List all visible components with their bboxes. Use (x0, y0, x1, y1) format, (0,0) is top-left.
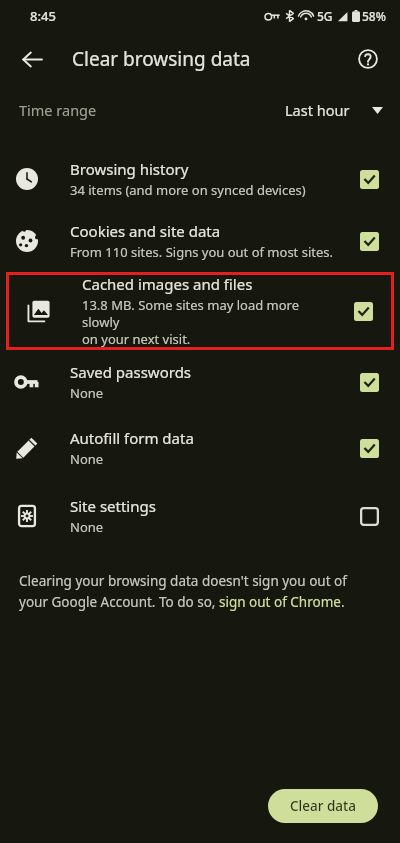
button[interactable]: Cookies and site data (0, 210, 400, 272)
button[interactable]: Browsing history (0, 148, 400, 210)
button[interactable]: Checked (354, 433, 384, 463)
staticText: Site settings (70, 496, 156, 516)
button[interactable]: Site settings (0, 482, 400, 550)
staticText: Browsing history (70, 159, 189, 179)
staticText: 58% (362, 8, 386, 24)
staticText: Clear data (290, 797, 356, 815)
button[interactable]: Back (12, 39, 52, 79)
button[interactable]: Autofill form data (0, 414, 400, 482)
staticText: 34 items (and more on synced devices) (70, 181, 306, 199)
staticText: Last hour (285, 100, 350, 120)
staticText: Cached images and files (82, 274, 253, 294)
button[interactable]: Checked (354, 226, 384, 256)
staticText: Cookies and site data (70, 221, 221, 241)
button[interactable]: Checked (354, 367, 384, 397)
staticText: 5G (317, 8, 333, 24)
button[interactable]: Time range (0, 86, 400, 134)
staticText: None (70, 450, 104, 468)
staticText: Clear browsing data (72, 46, 251, 72)
button[interactable]: Checked (354, 164, 384, 194)
staticText: Autofill form data (70, 428, 194, 448)
staticText: 13.8 MB. Some sites may load more slowly… (82, 296, 338, 348)
button[interactable]: Clearing your browsing data doesn't sign… (19, 572, 360, 611)
staticText: Time range (19, 100, 97, 120)
staticText: None (70, 518, 104, 536)
button[interactable]: Checked (348, 296, 378, 326)
staticText: None (70, 384, 104, 402)
staticText: From 110 sites. Signs you out of most si… (70, 243, 334, 261)
staticText: 8:45 (30, 7, 56, 25)
button[interactable]: Unchecked (354, 501, 384, 531)
button[interactable]: Help (348, 39, 388, 79)
button[interactable]: Saved passwords (0, 350, 400, 414)
staticText: Saved passwords (70, 362, 192, 382)
button[interactable]: Clear data (268, 789, 378, 823)
